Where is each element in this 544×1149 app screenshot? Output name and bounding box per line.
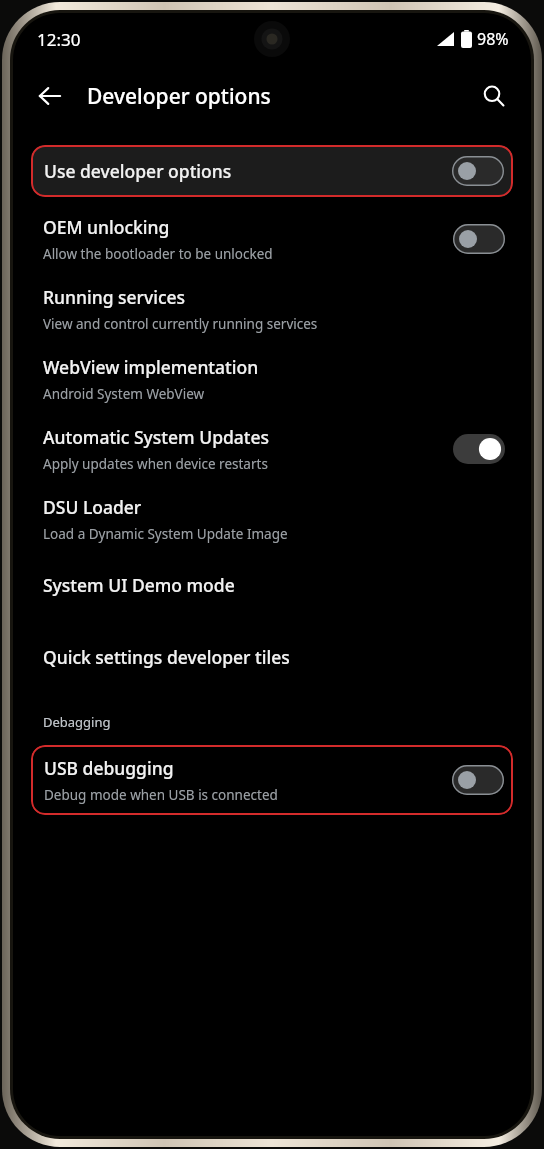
staticText: 12:30 xyxy=(37,28,81,51)
button[interactable]: OEM unlocking xyxy=(13,215,531,263)
staticText: Load a Dynamic System Update Image xyxy=(43,525,288,543)
button[interactable]: WebView implementation xyxy=(13,355,531,403)
staticText: Running services xyxy=(43,285,186,309)
staticText: Quick settings developer tiles xyxy=(43,645,290,669)
staticText: Allow the bootloader to be unlocked xyxy=(43,245,273,263)
button[interactable]: On xyxy=(453,434,505,464)
button[interactable]: Quick settings developer tiles xyxy=(13,645,531,669)
staticText: Developer options xyxy=(87,82,271,111)
staticText: System UI Demo mode xyxy=(43,573,235,597)
button[interactable]: Automatic System Updates xyxy=(13,425,531,473)
staticText: Android System WebView xyxy=(43,385,205,403)
button[interactable]: Off xyxy=(452,156,504,186)
button[interactable]: USB debugging xyxy=(31,745,513,815)
staticText: Use developer options xyxy=(44,159,232,183)
staticText: Automatic System Updates xyxy=(43,425,270,449)
staticText: DSU Loader xyxy=(43,495,142,519)
staticText: View and control currently running servi… xyxy=(43,315,318,333)
button[interactable]: Off xyxy=(453,224,505,254)
staticText: OEM unlocking xyxy=(43,215,170,239)
staticText: Debagging xyxy=(43,713,111,731)
button[interactable]: Off xyxy=(452,765,504,795)
staticText: Debug mode when USB is connected xyxy=(44,786,278,804)
staticText: Apply updates when device restarts xyxy=(43,455,268,473)
button[interactable]: DSU Loader xyxy=(13,495,531,543)
button[interactable]: Running services xyxy=(13,285,531,333)
staticText: WebView implementation xyxy=(43,355,259,379)
button[interactable]: System UI Demo mode xyxy=(13,573,531,597)
button[interactable]: Search xyxy=(471,73,517,119)
staticText: USB debugging xyxy=(44,756,174,780)
button[interactable]: Back xyxy=(27,73,73,119)
button[interactable]: Use developer options xyxy=(31,145,513,197)
staticText: 98% xyxy=(477,28,509,50)
